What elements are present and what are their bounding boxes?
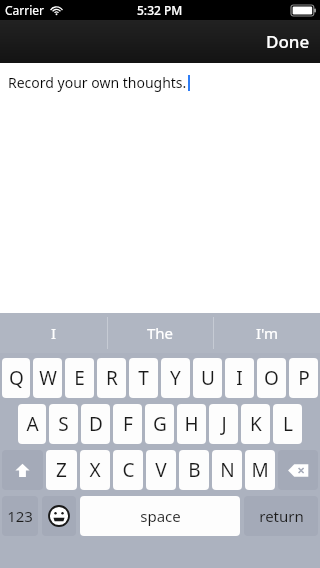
button[interactable]: I [225, 358, 254, 398]
staticText: S [58, 411, 69, 437]
staticText: R [106, 365, 118, 391]
staticText: U [201, 365, 215, 391]
staticText: Y [170, 365, 181, 391]
button[interactable]: R [97, 358, 126, 398]
staticText: X [89, 457, 101, 483]
button[interactable]: C [113, 450, 143, 490]
button[interactable]: J [209, 404, 238, 444]
staticText: C [122, 457, 135, 483]
staticText: O [264, 365, 279, 391]
button[interactable]: E [65, 358, 94, 398]
staticText: F [123, 411, 133, 437]
button[interactable]: P [289, 358, 318, 398]
button[interactable]: T [129, 358, 158, 398]
staticText: W [39, 365, 57, 391]
button[interactable]: V [146, 450, 176, 490]
button[interactable]: The [108, 313, 213, 353]
staticText: Record your own thoughts. [8, 73, 187, 92]
staticText: space [140, 506, 181, 526]
button[interactable]: G [145, 404, 174, 444]
button[interactable]: Record your own thoughts. [0, 63, 320, 313]
staticText: 123 [7, 506, 33, 526]
staticText: Done [266, 30, 310, 53]
button[interactable]: Backspace [278, 450, 318, 490]
staticText: E [74, 365, 85, 391]
staticText: K [250, 411, 262, 437]
button[interactable]: W [33, 358, 62, 398]
button[interactable]: space [80, 496, 240, 536]
staticText: I'm [256, 323, 279, 343]
staticText: B [188, 457, 201, 483]
staticText: G [153, 411, 167, 437]
button[interactable]: O [257, 358, 286, 398]
button[interactable]: X [80, 450, 110, 490]
staticText: Z [56, 457, 67, 483]
staticText: D [89, 411, 103, 437]
staticText: J [221, 411, 227, 437]
button[interactable]: D [81, 404, 110, 444]
button[interactable]: Y [161, 358, 190, 398]
staticText: N [220, 457, 235, 483]
button[interactable]: F [113, 404, 142, 444]
button[interactable]: M [245, 450, 275, 490]
button[interactable]: K [241, 404, 270, 444]
button[interactable]: I [0, 313, 107, 353]
staticText: M [251, 457, 269, 483]
button[interactable]: H [177, 404, 206, 444]
staticText: V [155, 457, 167, 483]
staticText: L [283, 411, 293, 437]
staticText: Carrier [5, 2, 45, 18]
staticText: T [138, 365, 149, 391]
button[interactable]: B [179, 450, 209, 490]
staticText: P [298, 365, 310, 391]
staticText: A [26, 411, 39, 437]
button[interactable]: Shift [2, 450, 43, 490]
staticText: H [184, 411, 199, 437]
button[interactable]: Done [256, 22, 320, 61]
staticText: I [51, 323, 57, 343]
button[interactable]: A [18, 404, 46, 444]
button[interactable]: Emoji [42, 496, 76, 536]
staticText: 5:32 PM [137, 2, 183, 18]
button[interactable]: 123 [2, 496, 38, 536]
button[interactable]: S [49, 404, 78, 444]
button[interactable]: return [244, 496, 318, 536]
button[interactable]: L [273, 404, 302, 444]
staticText: return [259, 506, 304, 526]
button[interactable]: Q [2, 358, 30, 398]
button[interactable]: U [193, 358, 222, 398]
staticText: Q [9, 365, 24, 391]
staticText: The [147, 323, 174, 343]
button[interactable]: I'm [214, 313, 320, 353]
staticText: I [236, 365, 243, 391]
button[interactable]: Z [46, 450, 77, 490]
button[interactable]: N [212, 450, 242, 490]
